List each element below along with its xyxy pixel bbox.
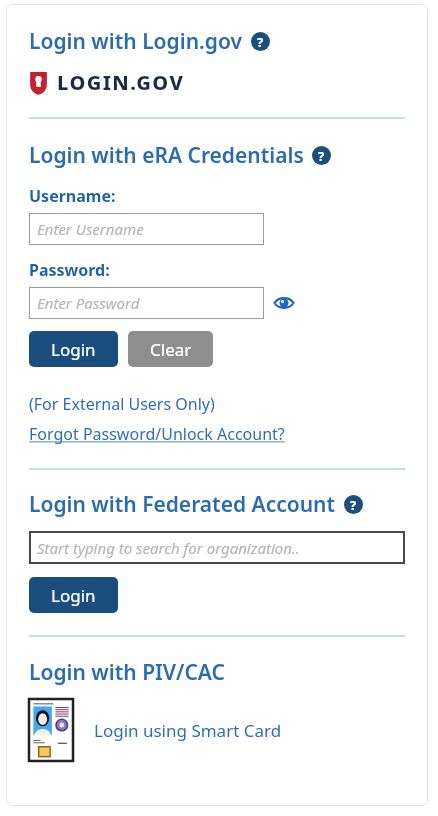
button[interactable]: Login xyxy=(29,331,118,367)
button[interactable]: Enter Password xyxy=(29,287,264,319)
staticText: Enter Username xyxy=(37,219,144,239)
staticText: Login with Federated Account xyxy=(29,490,336,519)
staticText: Forgot Password/Unlock Account? xyxy=(29,423,285,445)
staticText: Clear xyxy=(150,338,192,361)
staticText: ? xyxy=(257,33,264,51)
button[interactable]: Smart Card xyxy=(29,699,282,761)
button[interactable]: Help xyxy=(344,495,363,514)
button[interactable]: Help xyxy=(251,32,270,51)
button[interactable]: Forgot Password/Unlock Account? xyxy=(29,423,285,445)
button[interactable]: Show password xyxy=(271,290,297,316)
staticText: Start typing to search for organization.… xyxy=(37,538,300,558)
staticText: Login with Login.gov xyxy=(29,27,243,56)
button[interactable]: Enter Username xyxy=(29,213,264,245)
staticText: ? xyxy=(318,147,325,165)
button[interactable]: Login xyxy=(29,577,118,613)
button[interactable]: Clear xyxy=(128,331,213,367)
staticText: (For External Users Only) xyxy=(29,393,215,415)
other: Smart Card xyxy=(29,699,73,761)
staticText: Enter Password xyxy=(37,293,140,313)
button[interactable]: Start typing to search for organization.… xyxy=(29,531,405,564)
button[interactable]: Help xyxy=(312,146,331,165)
staticText: Login xyxy=(51,338,96,361)
staticText: Login with PIV/CAC xyxy=(29,658,225,687)
staticText: Username: xyxy=(29,185,116,207)
staticText: Login xyxy=(51,584,96,607)
staticText: ? xyxy=(350,496,357,514)
staticText: Login using Smart Card xyxy=(94,719,282,742)
staticText: Login with eRA Credentials xyxy=(29,141,304,170)
staticText: LOGIN.GOV xyxy=(57,69,185,96)
staticText: Password: xyxy=(29,259,110,281)
